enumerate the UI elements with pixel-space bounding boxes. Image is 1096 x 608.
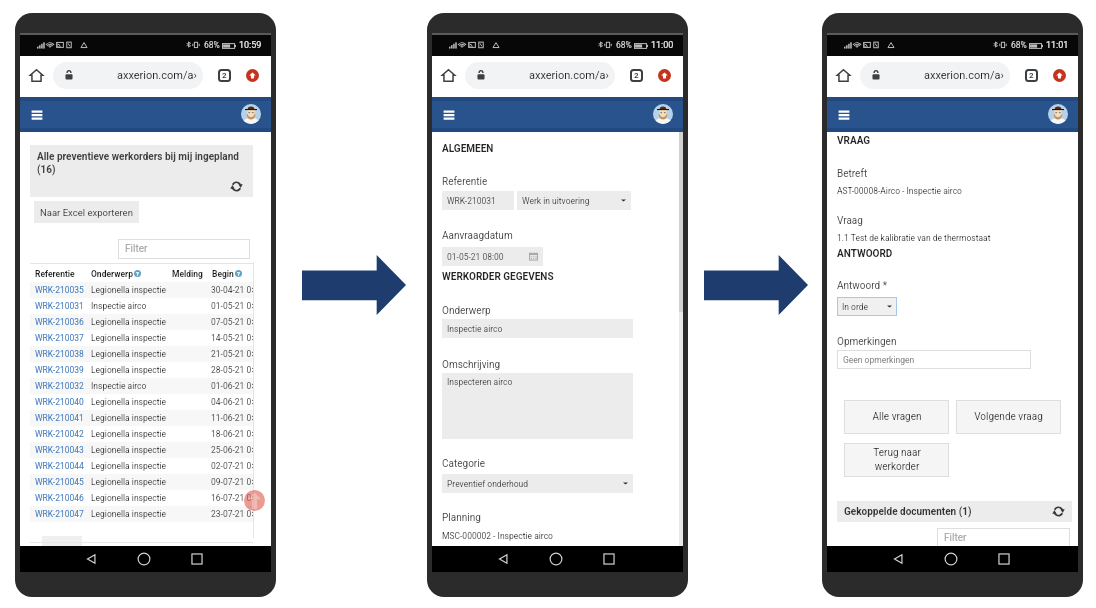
button[interactable]: Profile [1048, 104, 1068, 124]
staticText: AST-00008-Airco - Inspectie airco [837, 186, 962, 196]
button[interactable]: Scroll to top [244, 490, 265, 511]
button[interactable]: Refresh [230, 180, 243, 193]
staticText: Terug naar werkorder [873, 447, 921, 473]
button[interactable]: axxerion.com/a› [860, 62, 1010, 89]
button[interactable]: Back [84, 552, 98, 566]
staticText: Legionella inspectie [91, 461, 167, 471]
staticText: WRK-210044 [35, 461, 84, 471]
button[interactable]: WRK-210035 [30, 282, 253, 298]
button[interactable]: Alle vragen [844, 400, 949, 434]
button[interactable]: axxerion.com/a› [465, 62, 615, 89]
staticText: WRK-210035 [35, 285, 84, 295]
button[interactable]: 2 [630, 69, 643, 82]
button[interactable]: Home [30, 69, 43, 82]
staticText: Betreft [837, 168, 868, 180]
button[interactable]: Home [549, 552, 563, 566]
staticText: 01-05-21 08:00 [447, 252, 504, 262]
button[interactable]: Update [658, 69, 671, 82]
button[interactable]: Back [496, 552, 510, 566]
staticText: WRK-210045 [35, 477, 84, 487]
button[interactable]: axxerion.com/a› [53, 62, 203, 89]
staticText: WRK-210042 [35, 429, 84, 439]
staticText: Aanvraagdatum [442, 230, 513, 242]
button[interactable]: Terug naar werkorder [844, 443, 949, 477]
staticText: 68% [616, 40, 632, 50]
button[interactable]: WRK-210038 [30, 346, 253, 362]
staticText: Onderwerp [442, 305, 491, 317]
button[interactable]: WRK-210031 [447, 191, 509, 210]
staticText: Legionella inspectie [91, 333, 167, 343]
button[interactable]: WRK-210037 [30, 330, 253, 346]
button[interactable]: Recents [997, 552, 1011, 566]
button[interactable]: Back [891, 552, 905, 566]
button[interactable]: Geen opmerkingen [837, 350, 1031, 369]
button[interactable]: WRK-210043 [30, 442, 253, 458]
staticText: WERKORDER GEGEVENS [442, 271, 554, 283]
staticText: 01-05-21 0∶ [211, 301, 254, 311]
button[interactable]: Recents [602, 552, 616, 566]
staticText: Alle vragen [872, 411, 922, 423]
button[interactable]: In orde [842, 297, 892, 316]
button[interactable]: Profile [653, 104, 673, 124]
button[interactable]: WRK-210041 [30, 410, 253, 426]
button[interactable]: Update [246, 69, 259, 82]
button[interactable] [42, 536, 82, 548]
button[interactable]: WRK-210046 [30, 490, 253, 506]
button[interactable]: Home [137, 552, 151, 566]
button[interactable]: Menu [838, 109, 850, 121]
button[interactable]: WRK-210044 [30, 458, 253, 474]
staticText: Legionella inspectie [91, 413, 167, 423]
button[interactable]: 2 [218, 69, 231, 82]
button[interactable]: Naar Excel exporteren [34, 201, 139, 223]
staticText: ALGEMEEN [442, 143, 494, 155]
staticText: 16-07-21 0∶ [211, 493, 254, 503]
button[interactable]: Menu [443, 109, 455, 121]
staticText: WRK-210037 [35, 333, 84, 343]
staticText: Referentie [442, 176, 488, 188]
button[interactable]: Werk in uitvoering [522, 191, 626, 210]
staticText: 21-05-21 0∶ [211, 349, 254, 359]
button[interactable]: Inspecteren airco [442, 373, 633, 439]
button[interactable]: Refresh [1052, 505, 1065, 518]
button[interactable]: Home [944, 552, 958, 566]
staticText: 68% [1011, 40, 1027, 50]
button[interactable]: 01-05-21 08:00 [447, 247, 538, 266]
staticText: 11-06-21 0∶ [211, 413, 254, 423]
button[interactable]: WRK-210032 [30, 378, 253, 394]
staticText: In orde [842, 302, 869, 312]
staticText: WRK-210038 [35, 349, 84, 359]
button[interactable]: Preventief onderhoud [447, 474, 628, 493]
button[interactable]: Filter [937, 528, 1070, 547]
staticText: Antwoord * [837, 280, 887, 292]
staticText: Inspectie airco [447, 324, 503, 334]
button[interactable]: Inspectie airco [447, 319, 628, 338]
staticText: WRK-210043 [35, 445, 84, 455]
staticText: Legionella inspectie [91, 397, 167, 407]
button[interactable]: WRK-210031 [30, 298, 253, 314]
button[interactable]: WRK-210047 [30, 506, 253, 522]
button[interactable]: Home [442, 69, 455, 82]
staticText: WRK-210032 [35, 381, 84, 391]
staticText: 07-05-21 0∶ [211, 317, 254, 327]
staticText: axxerion.com/a› [117, 69, 197, 82]
button[interactable]: Menu [31, 109, 43, 121]
staticText: 28-05-21 0∶ [211, 365, 254, 375]
button[interactable]: WRK-210039 [30, 362, 253, 378]
staticText: Legionella inspectie [91, 445, 167, 455]
button[interactable]: Profile [241, 104, 261, 124]
button[interactable]: Filter [118, 239, 250, 259]
button[interactable]: 2 [1025, 69, 1038, 82]
button[interactable]: WRK-210045 [30, 474, 253, 490]
staticText: Preventief onderhoud [447, 479, 529, 489]
button[interactable]: WRK-210036 [30, 314, 253, 330]
button[interactable]: Update [1053, 69, 1066, 82]
button[interactable]: WRK-210042 [30, 426, 253, 442]
staticText: 01-06-21 0∶ [211, 381, 254, 391]
button[interactable]: Recents [190, 552, 204, 566]
button[interactable]: Volgende vraag [956, 400, 1061, 434]
staticText: 04-06-21 0∶ [211, 397, 254, 407]
button[interactable]: WRK-210040 [30, 394, 253, 410]
button[interactable]: Home [837, 69, 850, 82]
staticText: WRK-210031 [447, 196, 496, 206]
staticText: Onderwerp [91, 269, 133, 279]
